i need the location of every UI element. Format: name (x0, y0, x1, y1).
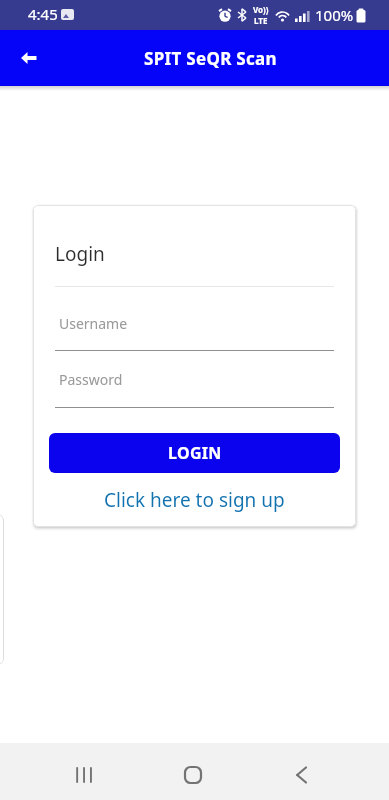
staticText: LTE (254, 15, 268, 26)
staticText: LOGIN (168, 442, 222, 464)
button[interactable] (0, 30, 56, 86)
button[interactable] (281, 755, 321, 795)
staticText: Vo)) (253, 4, 269, 15)
staticText: 100% (315, 5, 354, 25)
button[interactable] (173, 755, 213, 795)
button[interactable]: LOGIN (49, 433, 340, 473)
staticText: Password (59, 370, 123, 389)
staticText: 4:45 (28, 4, 58, 24)
staticText: SPIT SeQR Scan (144, 47, 277, 70)
button[interactable] (64, 755, 104, 795)
staticText: Click here to sign up (104, 487, 285, 513)
staticText: Login (55, 241, 105, 267)
staticText: Username (59, 314, 128, 333)
button[interactable]: Click here to sign up (104, 487, 285, 513)
